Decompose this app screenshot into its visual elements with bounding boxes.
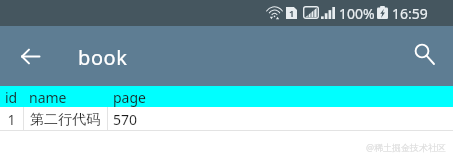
staticText: id: [5, 88, 18, 107]
button[interactable]: Search: [402, 32, 447, 77]
staticText: @稀土掘金技术社区: [366, 141, 447, 153]
staticText: 100%: [339, 4, 375, 23]
staticText: 570: [113, 110, 138, 129]
button[interactable]: 1: [0, 107, 453, 130]
staticText: 1: [289, 7, 295, 19]
staticText: 1: [7, 110, 16, 129]
staticText: 第二行代码: [30, 111, 100, 129]
staticText: name: [29, 88, 67, 107]
button[interactable]: Navigate up: [8, 34, 53, 79]
staticText: page: [113, 88, 146, 107]
staticText: book: [78, 44, 128, 71]
staticText: 16:59: [392, 4, 428, 23]
